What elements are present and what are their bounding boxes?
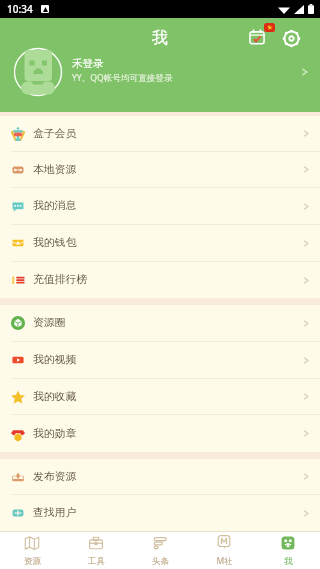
- staticText: 工具: [88, 556, 105, 567]
- button[interactable]: 充值排行榜: [0, 262, 320, 298]
- button[interactable]: 我的收藏: [0, 379, 320, 414]
- staticText: 我: [284, 556, 293, 567]
- staticText: 10:34: [7, 2, 33, 16]
- button[interactable]: 签到: [245, 25, 277, 51]
- button[interactable]: 资源圈: [0, 305, 320, 341]
- staticText: 本地资源: [33, 163, 303, 177]
- staticText: 查找用户: [33, 506, 303, 520]
- staticText: 我的消息: [33, 199, 303, 213]
- staticText: 我的钱包: [33, 236, 303, 250]
- button[interactable]: 我的勋章: [0, 415, 320, 452]
- button[interactable]: 资源: [0, 532, 64, 569]
- button[interactable]: 禾登录: [0, 57, 320, 112]
- staticText: 发布资源: [33, 470, 303, 484]
- staticText: 我的勋章: [33, 427, 303, 441]
- staticText: 资源圈: [33, 316, 303, 330]
- staticText: 盒子会员: [33, 127, 303, 141]
- button[interactable]: 我的消息: [0, 188, 320, 224]
- staticText: 我的收藏: [33, 390, 303, 404]
- staticText: 资源: [24, 556, 41, 567]
- button[interactable]: 我: [256, 532, 320, 569]
- staticText: 禾登录: [72, 57, 104, 70]
- button[interactable]: 工具: [64, 532, 128, 569]
- button[interactable]: M社: [192, 532, 256, 569]
- button[interactable]: 我的视频: [0, 342, 320, 378]
- button[interactable]: 盒子会员: [0, 116, 320, 151]
- button[interactable]: 发布资源: [0, 459, 320, 494]
- staticText: 充值排行榜: [33, 273, 303, 287]
- button[interactable]: 查找用户: [0, 495, 320, 531]
- button[interactable]: 本地资源: [0, 152, 320, 187]
- staticText: M社: [216, 555, 233, 567]
- staticText: 我的视频: [33, 353, 303, 367]
- button[interactable]: 我的钱包: [0, 225, 320, 261]
- button[interactable]: 头条: [128, 532, 192, 569]
- staticText: YY、QQ帐号均可直接登录: [72, 72, 173, 84]
- staticText: 我: [152, 28, 168, 48]
- button[interactable]: 设置: [279, 26, 303, 50]
- staticText: 头条: [152, 556, 169, 567]
